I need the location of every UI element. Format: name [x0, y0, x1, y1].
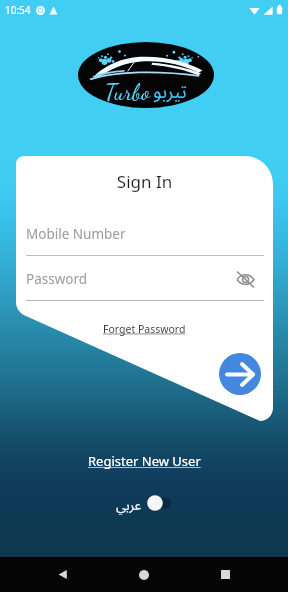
- staticText: Mobile Number: [26, 225, 126, 243]
- button[interactable]: Arabic language toggle: [147, 492, 173, 512]
- staticText: Forget Password: [103, 322, 186, 336]
- button[interactable]: Forget Password: [16, 320, 273, 338]
- button[interactable]: Password: [26, 269, 264, 301]
- staticText: Sign In: [16, 170, 273, 193]
- button[interactable]: Mobile Number: [26, 224, 264, 256]
- button[interactable]: Recent apps: [207, 557, 243, 592]
- button[interactable]: Back: [45, 557, 81, 592]
- staticText: Password: [26, 270, 88, 288]
- button[interactable]: Show password: [234, 268, 257, 291]
- staticText: 10:54: [5, 3, 31, 17]
- staticText: Register New User: [88, 452, 201, 470]
- button[interactable]: Sign in: [219, 353, 261, 395]
- staticText: تيربو: [153, 72, 187, 112]
- staticText: Turbo: [105, 78, 151, 106]
- staticText: عربي: [116, 491, 142, 515]
- button[interactable]: Register New User: [0, 450, 288, 472]
- button[interactable]: Home: [126, 557, 162, 592]
